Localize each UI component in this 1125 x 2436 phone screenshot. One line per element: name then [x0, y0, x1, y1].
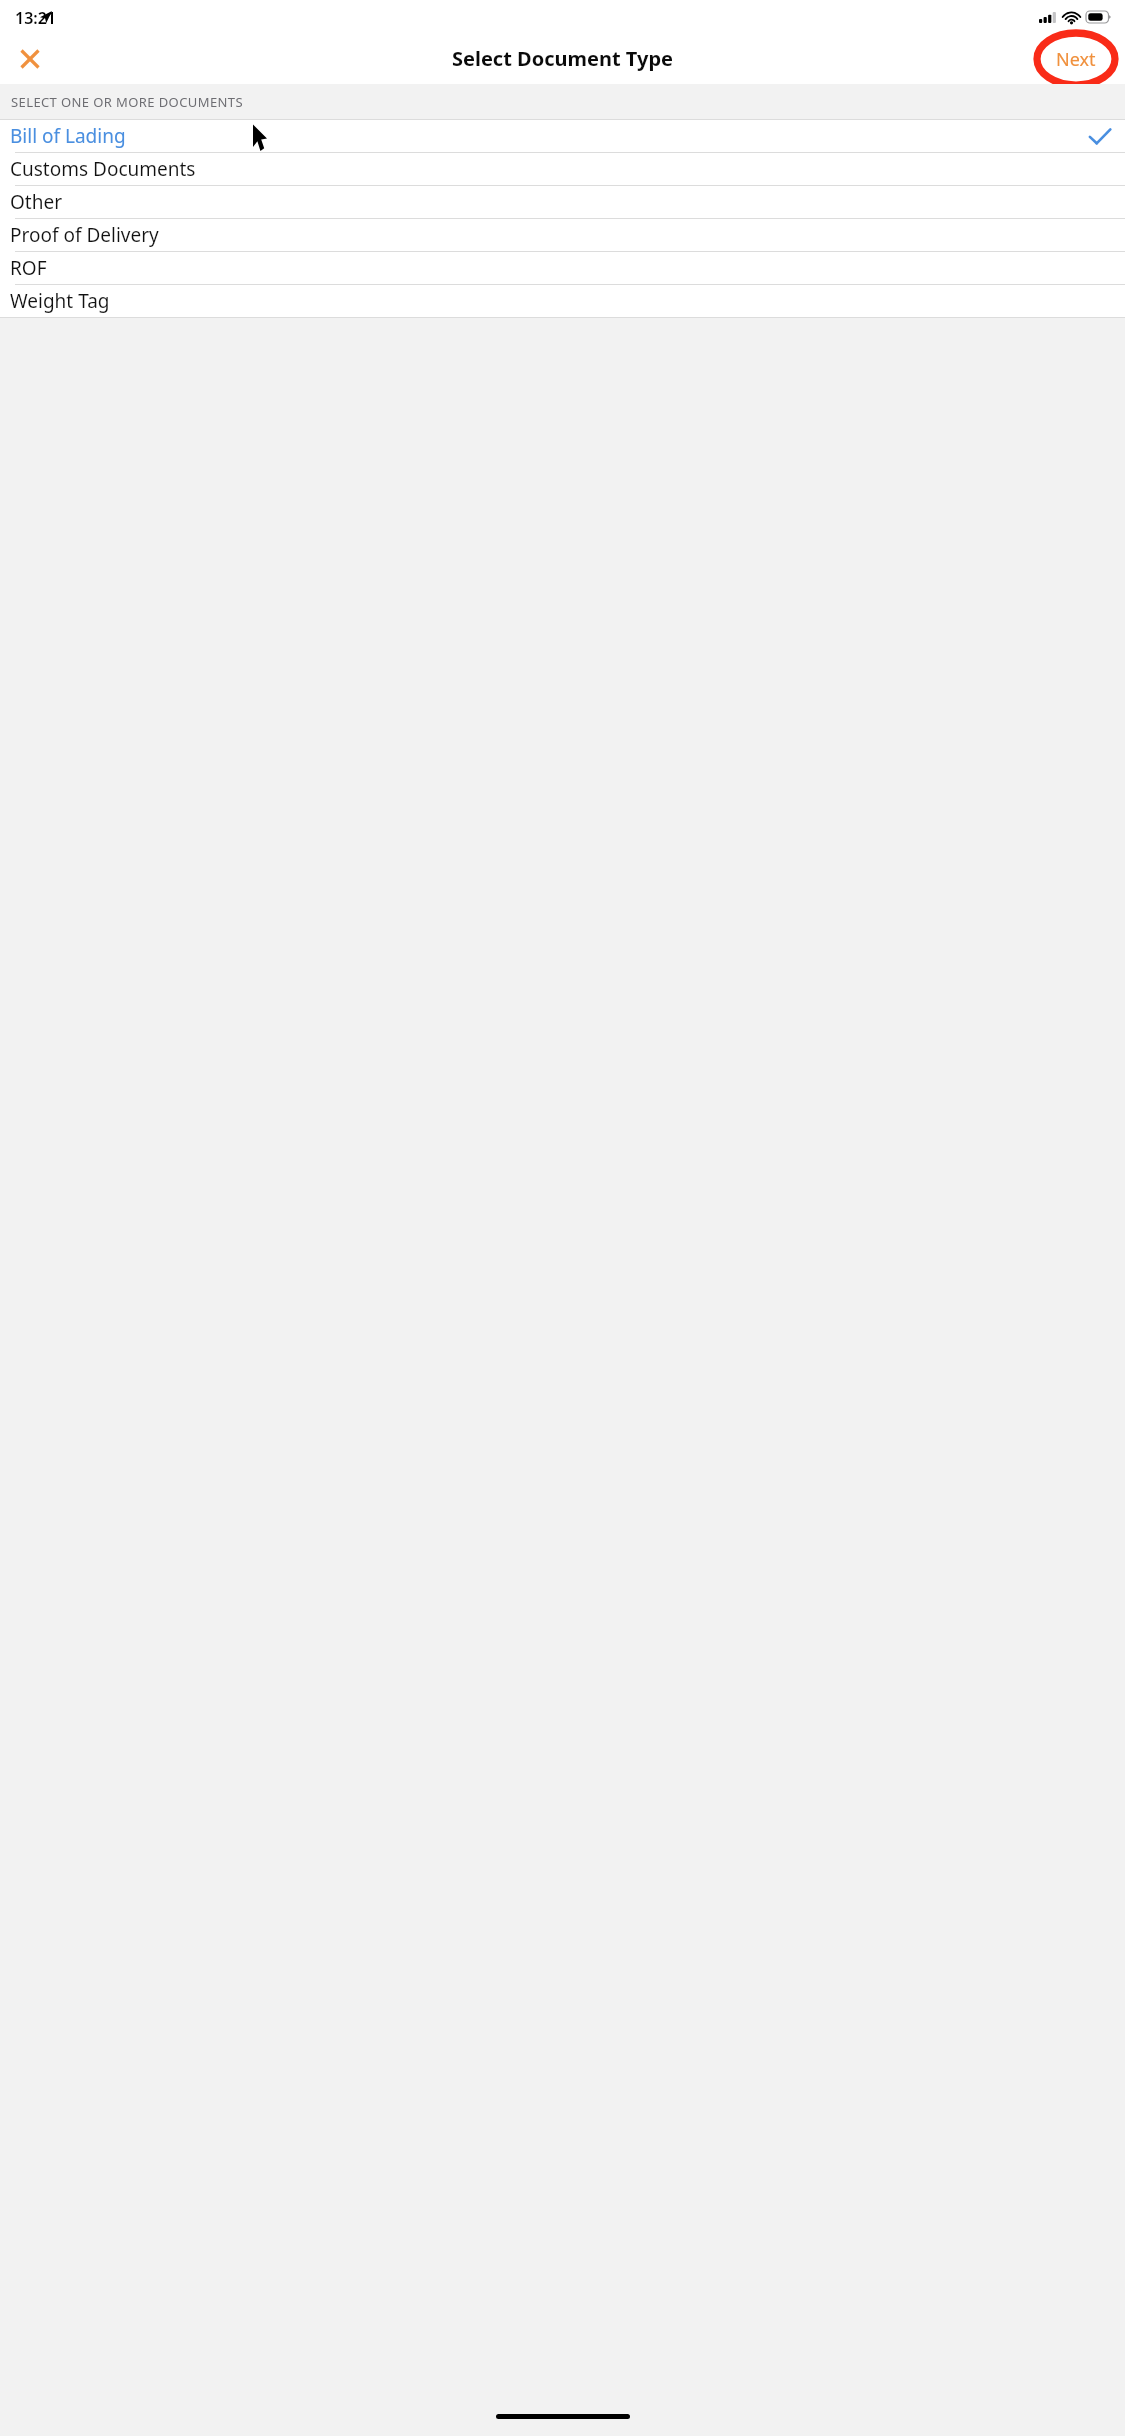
staticText: Weight Tag — [10, 288, 110, 314]
staticText: Customs Documents — [10, 156, 196, 182]
button[interactable]: Proof of Delivery — [0, 219, 1125, 251]
button[interactable]: Next — [1033, 34, 1119, 84]
button[interactable]: Other — [0, 186, 1125, 218]
staticText: ROF — [10, 255, 47, 281]
button[interactable]: Bill of Lading — [0, 120, 1125, 152]
staticText: Proof of Delivery — [10, 222, 159, 248]
staticText: Other — [10, 189, 63, 215]
staticText: SELECT ONE OR MORE DOCUMENTS — [11, 93, 243, 111]
button[interactable]: Close — [8, 37, 52, 81]
button[interactable]: ROF — [0, 252, 1125, 284]
staticText: Next — [1056, 47, 1096, 72]
button[interactable]: Weight Tag — [0, 285, 1125, 317]
staticText: Select Document Type — [452, 45, 673, 72]
staticText: Bill of Lading — [10, 123, 126, 149]
button[interactable]: Customs Documents — [0, 153, 1125, 185]
staticText: 13:21 — [15, 7, 57, 29]
